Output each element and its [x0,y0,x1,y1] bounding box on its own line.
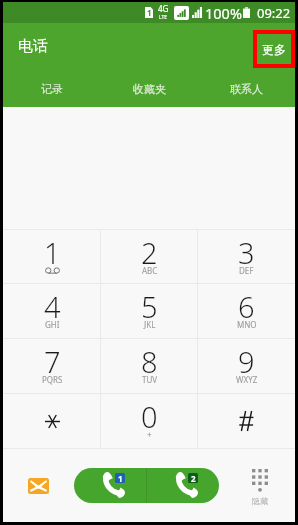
staticText: 5 [141,287,158,326]
staticText: ABC [142,265,158,276]
staticText: 联系人 [230,82,263,96]
staticText: 电话 [18,37,48,56]
staticText: PQRS [42,374,63,385]
staticText: 收藏夹 [133,82,166,96]
staticText: + [147,429,152,440]
staticText: LTE [159,14,168,21]
staticText: 1 [44,233,61,272]
button[interactable]: Call with SIM 2 [147,468,219,503]
staticText: 100% [205,3,242,23]
staticText: 09:22 [257,4,291,22]
button[interactable]: 1 [3,230,101,283]
button[interactable]: 9 [198,339,295,393]
button[interactable]: 0 [101,394,198,448]
staticText: 4G [158,3,169,14]
staticText: 1 [147,7,152,18]
staticText: 4 [44,287,61,326]
button[interactable]: 3 [198,230,295,283]
button[interactable]: 8 [101,339,198,393]
staticText: 1 [118,473,123,483]
button[interactable]: 收藏夹 [101,70,198,107]
button[interactable]: 7 [3,339,101,393]
staticText: 2 [141,233,158,272]
staticText: JKL [144,319,156,330]
button[interactable]: 2 [101,230,198,283]
staticText: DEF [239,265,254,276]
staticText: MNO [237,319,257,330]
staticText: 记录 [41,82,63,96]
button[interactable]: Call with SIM 1 [74,468,146,503]
button[interactable]: 记录 [3,70,101,107]
staticText: 更多 [262,42,286,57]
staticText: GHI [45,319,60,330]
button[interactable]: Hide keypad [219,449,295,522]
staticText: 2 [191,473,196,483]
button[interactable]: 6 [198,284,295,338]
button[interactable] [3,394,101,448]
staticText: 0 [141,397,158,436]
staticText: 隐藏 [252,496,268,506]
staticText: 8 [141,342,158,381]
button[interactable]: Send message [3,449,74,522]
button[interactable]: 更多 [253,30,295,68]
button[interactable]: 5 [101,284,198,338]
staticText: 6 [238,287,255,326]
button[interactable]: 联系人 [198,70,295,107]
button[interactable] [198,394,295,448]
staticText: 7 [44,342,61,381]
staticText: WXYZ [236,374,258,385]
button[interactable]: 4 [3,284,101,338]
staticText: 3 [238,233,255,272]
staticText: 9 [238,342,255,381]
staticText: TUV [142,374,158,385]
